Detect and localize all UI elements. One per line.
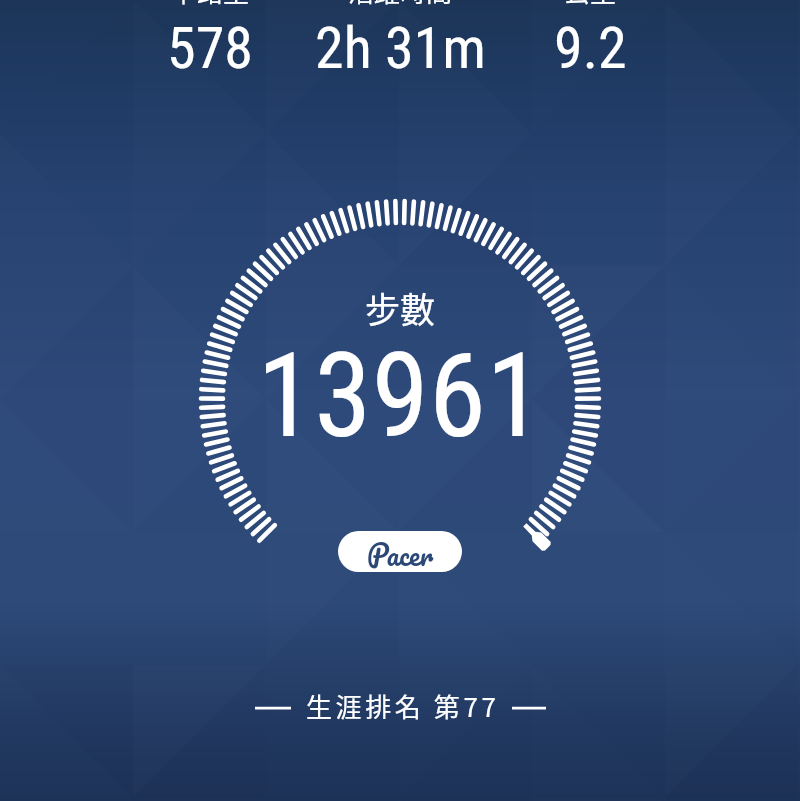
- staticText: 9.2: [554, 14, 627, 82]
- staticText: 卡路里: [171, 0, 250, 10]
- button[interactable]: Pacer: [338, 531, 462, 572]
- staticText: 活躍時間: [348, 0, 453, 10]
- staticText: 步數: [365, 282, 436, 333]
- button[interactable]: 活躍時間: [305, 0, 495, 10]
- button[interactable]: 2h 31m: [305, 14, 495, 82]
- staticText: 578: [167, 14, 253, 82]
- button[interactable]: 9.2: [495, 14, 685, 82]
- button[interactable]: 公里: [495, 0, 685, 10]
- staticText: 公里: [564, 0, 617, 10]
- staticText: 生涯排名 第77: [306, 687, 500, 725]
- staticText: 13961: [257, 328, 544, 464]
- staticText: 2h 31m: [315, 14, 486, 82]
- button[interactable]: 578: [115, 14, 305, 82]
- staticText: Pacer: [367, 531, 434, 572]
- button[interactable]: 生涯排名 第77: [255, 687, 546, 725]
- button[interactable]: 卡路里: [115, 0, 305, 10]
